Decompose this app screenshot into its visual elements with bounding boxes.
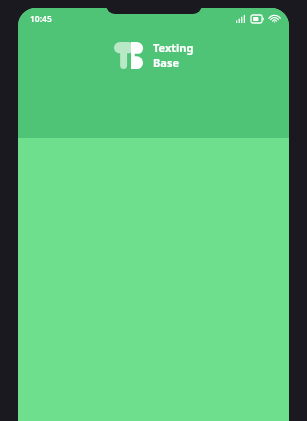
button[interactable]: Texting Base logo <box>18 40 289 70</box>
staticText: Base <box>153 55 179 70</box>
other: Texting Base logo <box>114 42 147 69</box>
staticText: 10:45 <box>30 13 52 25</box>
staticText: Texting <box>153 40 194 55</box>
